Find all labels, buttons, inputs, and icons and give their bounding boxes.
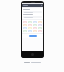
button[interactable] [23,11,42,13]
button[interactable] [23,24,27,26]
button[interactable] [28,24,32,26]
button[interactable] [38,24,42,26]
button[interactable] [28,27,32,29]
button[interactable]: Submit [29,35,37,37]
button[interactable] [38,21,42,23]
button[interactable] [23,16,42,18]
button[interactable] [23,30,27,32]
button[interactable] [28,21,32,23]
button[interactable] [23,21,27,23]
button[interactable] [23,27,27,29]
button[interactable] [33,24,37,26]
button[interactable] [33,21,37,23]
button[interactable] [38,30,42,32]
button[interactable] [28,30,32,32]
button[interactable] [33,30,37,32]
button[interactable] [33,27,37,29]
button[interactable] [38,27,42,29]
button[interactable]: Menu [22,4,43,7]
